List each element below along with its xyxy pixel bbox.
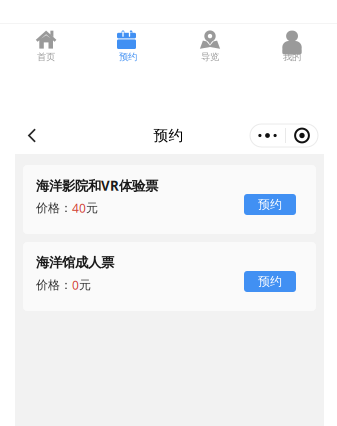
staticText: 首页: [37, 51, 55, 63]
staticText: 价格：: [36, 201, 72, 215]
staticText: 海洋馆成人票: [36, 254, 114, 271]
staticText: 元: [86, 201, 98, 215]
staticText: 预约: [153, 126, 183, 144]
staticText: 价格：: [36, 278, 72, 292]
button[interactable]: 首页: [5, 24, 87, 66]
staticText: 我的: [283, 51, 301, 63]
button[interactable]: Back: [19, 120, 45, 150]
button[interactable]: 导览: [169, 24, 251, 66]
staticText: 40: [72, 200, 86, 216]
button[interactable]: 预约: [244, 194, 296, 215]
staticText: 预约: [258, 274, 282, 289]
staticText: 导览: [201, 51, 219, 63]
staticText: 预约: [119, 51, 137, 63]
staticText: 元: [79, 278, 91, 292]
staticText: 海洋影院和VR体验票: [36, 177, 158, 194]
button[interactable]: 预约: [244, 271, 296, 292]
staticText: 0: [72, 277, 79, 293]
button[interactable]: 我的: [251, 24, 333, 66]
button[interactable]: 预约: [87, 24, 169, 66]
staticText: 预约: [258, 197, 282, 212]
